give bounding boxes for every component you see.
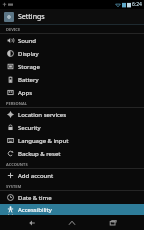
staticText: Sound xyxy=(18,37,37,45)
staticText: Settings xyxy=(18,12,45,22)
staticText: DEVICE xyxy=(6,27,21,32)
staticText: Battery xyxy=(18,76,39,84)
staticText: Language & input xyxy=(18,137,69,145)
button[interactable]: Settings xyxy=(0,9,144,24)
button[interactable]: Date & time xyxy=(0,191,144,204)
staticText: PERSONAL xyxy=(6,101,27,106)
button[interactable]: Recents xyxy=(104,215,122,230)
staticText: Display xyxy=(18,50,39,58)
button[interactable]: Home xyxy=(63,215,81,230)
staticText: Storage xyxy=(18,63,40,71)
staticText: Date & time xyxy=(18,194,52,202)
button[interactable]: Battery xyxy=(0,73,144,86)
button[interactable]: Security xyxy=(0,121,144,134)
button[interactable]: Sound xyxy=(0,34,144,47)
button[interactable]: Display xyxy=(0,47,144,60)
button[interactable]: Accessibility xyxy=(0,204,144,215)
staticText: Add account xyxy=(18,172,54,180)
button[interactable]: Back xyxy=(23,215,41,230)
button[interactable]: Apps xyxy=(0,86,144,99)
staticText: Backup & reset xyxy=(18,150,61,158)
staticText: Apps xyxy=(18,89,33,97)
staticText: 6:24 xyxy=(132,1,142,8)
staticText: Location services xyxy=(18,111,67,119)
staticText: Security xyxy=(18,124,41,132)
button[interactable]: Storage xyxy=(0,60,144,73)
button[interactable]: Language & input xyxy=(0,134,144,147)
button[interactable]: Location services xyxy=(0,108,144,121)
button[interactable]: Add account xyxy=(0,169,144,182)
staticText: ACCOUNTS xyxy=(6,162,28,167)
staticText: Accessibility xyxy=(18,206,52,214)
staticText: SYSTEM xyxy=(6,184,22,189)
button[interactable]: Backup & reset xyxy=(0,147,144,160)
